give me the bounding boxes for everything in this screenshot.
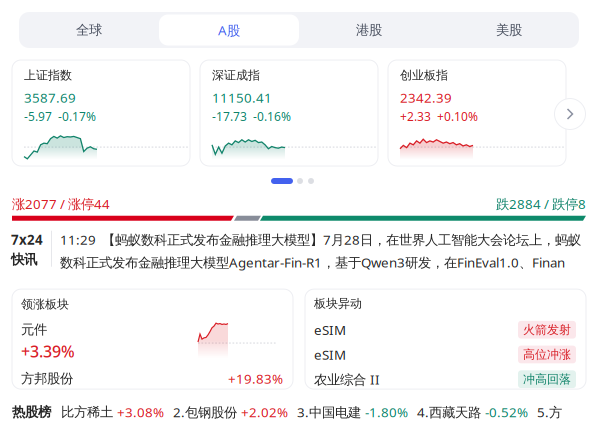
staticText: +3.08% [117, 403, 164, 421]
staticText: 冲高回落 [523, 372, 571, 387]
staticText: A股 [218, 21, 240, 39]
staticText: 11:29 【蚂蚁数科正式发布金融推理大模型】7月28日，在世界人工智能大会论坛… [60, 231, 581, 248]
staticText: +2.02% [241, 403, 288, 421]
staticText: 2342.39 [400, 89, 452, 106]
staticText: 11150.41 [212, 89, 272, 106]
staticText: 创业板指 [400, 68, 448, 83]
staticText: 方邦股份 [21, 370, 73, 387]
staticText: 快讯 [11, 251, 37, 268]
staticText: 比方稀土 [61, 404, 113, 420]
staticText: -1.80% [365, 403, 408, 421]
staticText: 涨2077 / 涨停44 [12, 195, 110, 213]
staticText: eSIM [314, 321, 346, 339]
button[interactable]: 板块异动 [305, 289, 586, 389]
staticText: 全球 [76, 22, 102, 38]
staticText: 3.中国电建 [297, 403, 361, 421]
staticText: +19.83% [228, 370, 283, 387]
staticText: 3587.69 [24, 89, 76, 106]
staticText: -0.52% [485, 403, 528, 421]
staticText: -0.17% [58, 108, 96, 124]
staticText: -17.73 [212, 108, 247, 124]
staticText: 美股 [496, 22, 522, 38]
button[interactable]: 下一组指数 [553, 97, 587, 131]
staticText: 2.包钢股份 [173, 403, 237, 421]
button[interactable]: 港股 [299, 12, 439, 48]
staticText: 7x24 [11, 231, 43, 248]
staticText: -0.16% [253, 108, 291, 124]
staticText: -5.97 [24, 108, 52, 124]
button[interactable]: A股 [159, 12, 299, 48]
staticText: 板块异动 [314, 296, 362, 311]
button[interactable]: 美股 [439, 12, 579, 48]
staticText: 领涨板块 [21, 297, 69, 312]
staticText: 5.方 [537, 403, 562, 421]
staticText: 高位冲涨 [523, 347, 571, 362]
staticText: eSIM [314, 346, 346, 363]
button[interactable]: 领涨板块 [12, 289, 293, 389]
button[interactable]: 全球 [19, 12, 159, 48]
staticText: 深证成指 [212, 68, 260, 83]
staticText: 港股 [356, 22, 382, 38]
staticText: 上证指数 [24, 68, 72, 83]
staticText: 跌2884 / 跌停8 [496, 195, 586, 213]
button[interactable]: 创业板指 [388, 60, 566, 166]
staticText: +3.39% [21, 341, 75, 362]
staticText: 4.西藏天路 [417, 403, 481, 421]
staticText: 火箭发射 [523, 322, 571, 337]
staticText: 元件 [21, 321, 47, 338]
button[interactable]: 上证指数 [12, 60, 190, 166]
button[interactable]: 深证成指 [200, 60, 378, 166]
staticText: +0.10% [437, 108, 478, 124]
staticText: +2.33 [400, 108, 431, 124]
staticText: 热股榜 [12, 404, 51, 420]
staticText: 农业综合 II [314, 370, 380, 388]
staticText: 数科正式发布金融推理大模型Agentar-Fin-R1，基于Qwen3研发，在F… [60, 253, 565, 271]
